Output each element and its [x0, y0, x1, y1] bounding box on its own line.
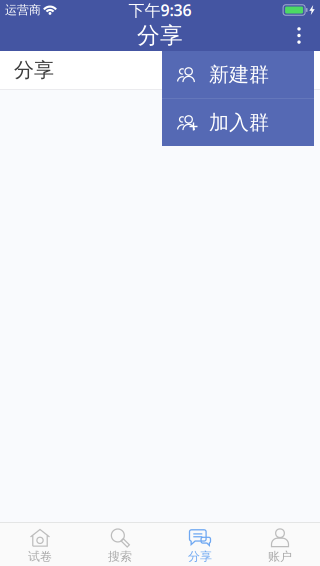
- staticText: 搜索: [108, 549, 132, 564]
- staticText: 新建群: [209, 62, 269, 87]
- staticText: 分享: [14, 58, 54, 82]
- staticText: 试卷: [28, 549, 52, 564]
- button[interactable]: 更多: [285, 20, 313, 51]
- button[interactable]: 加入群: [162, 99, 314, 146]
- button[interactable]: 新建群: [162, 51, 314, 98]
- staticText: 加入群: [209, 110, 269, 135]
- staticText: 分享: [137, 22, 183, 49]
- staticText: 分享: [188, 549, 212, 564]
- button[interactable]: 试卷: [0, 523, 80, 566]
- button[interactable]: 账户: [240, 523, 320, 566]
- button[interactable]: 分享: [0, 51, 320, 89]
- staticText: 运营商: [5, 3, 41, 17]
- button[interactable]: 搜索: [80, 523, 160, 566]
- button[interactable]: 分享: [160, 523, 240, 566]
- staticText: 账户: [268, 549, 292, 564]
- staticText: 下午9:36: [128, 0, 191, 21]
